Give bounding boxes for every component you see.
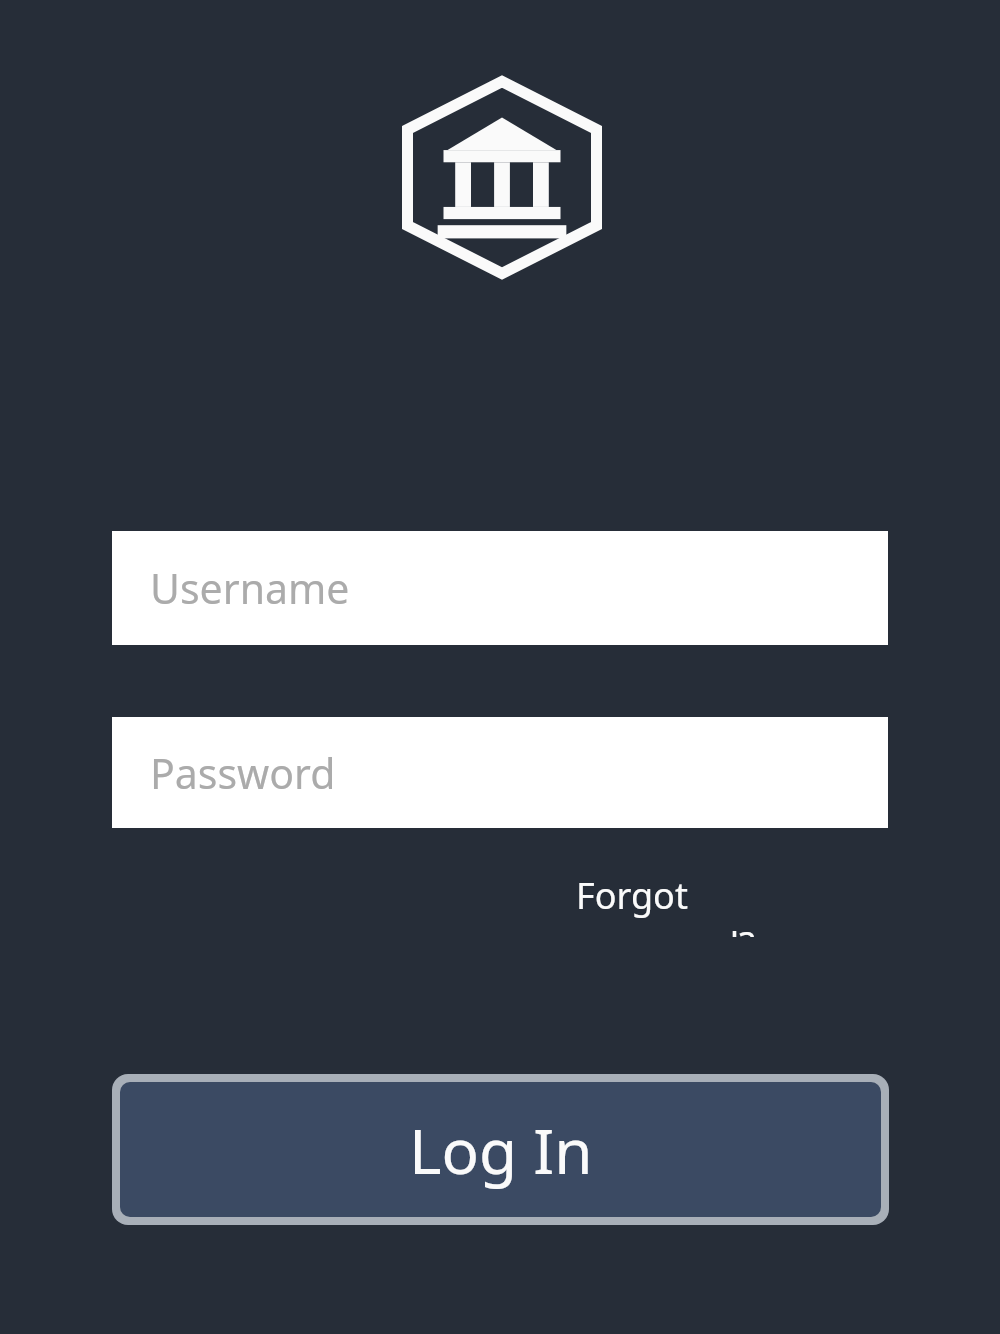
button[interactable]: Forgot password? xyxy=(576,871,888,937)
staticText: Password xyxy=(150,745,336,801)
other: Bank logo xyxy=(402,76,602,279)
staticText: Log In xyxy=(409,1108,593,1192)
button[interactable]: Password xyxy=(112,717,888,828)
button[interactable]: Username xyxy=(112,531,888,645)
button[interactable]: Log In xyxy=(120,1082,881,1217)
staticText: Forgot password? xyxy=(576,871,873,937)
staticText: Username xyxy=(150,560,350,616)
